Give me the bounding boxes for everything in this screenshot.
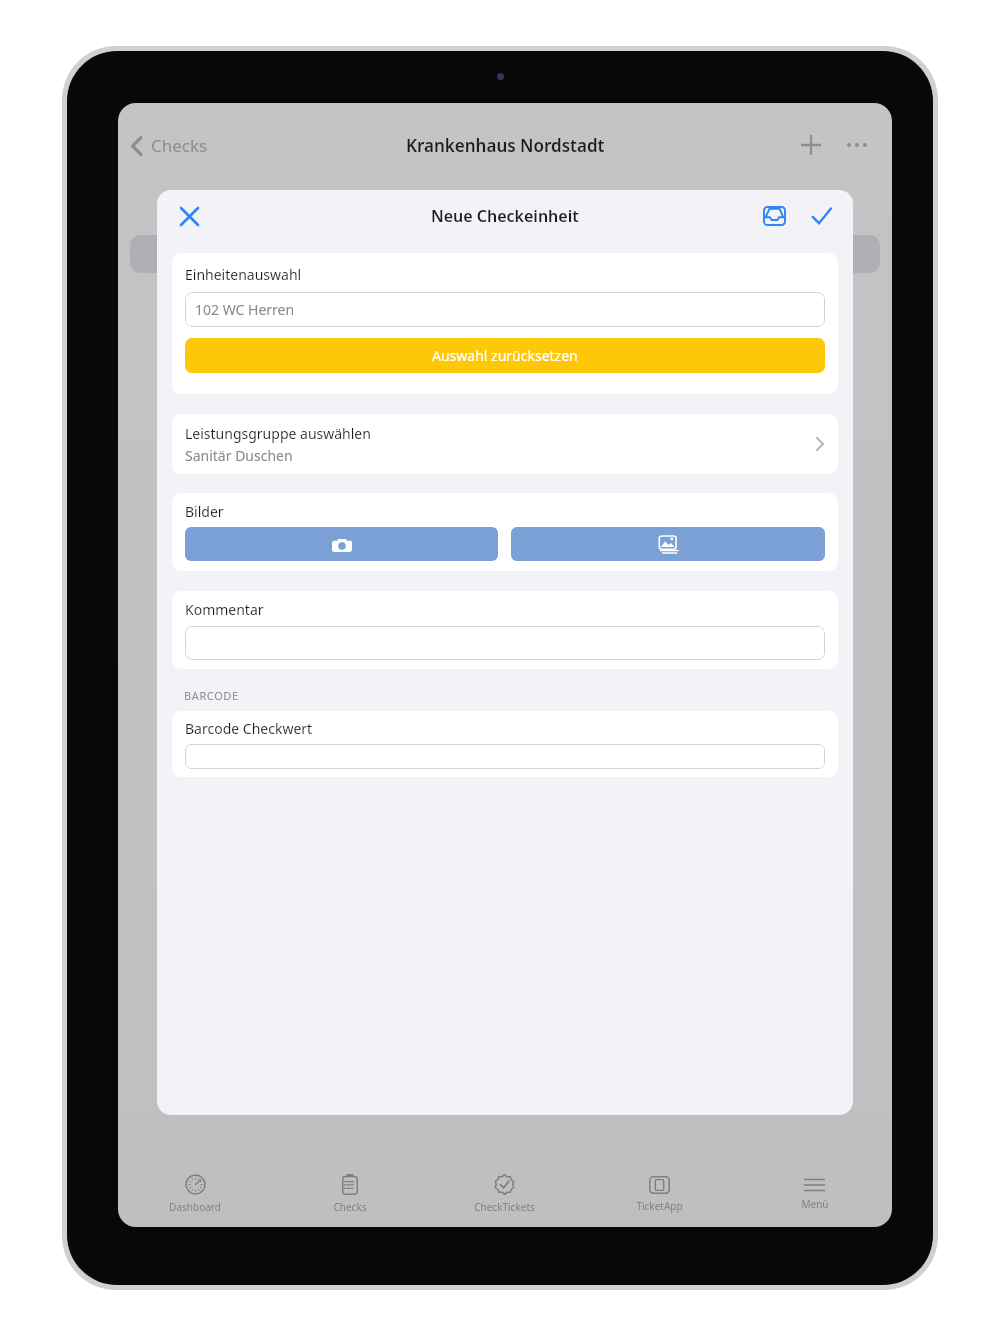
button[interactable]: Checks [272, 1161, 427, 1227]
button[interactable]: Checks [124, 128, 214, 163]
button[interactable]: 102 WC Herren [185, 292, 825, 327]
button[interactable] [185, 744, 825, 769]
button[interactable]: Bild auswählen [511, 527, 825, 561]
staticText: Checks [333, 1200, 367, 1214]
staticText: Neue Checkeinheit [431, 205, 579, 227]
staticText: CheckTickets [474, 1200, 535, 1214]
button[interactable]: Hinzufügen [794, 128, 828, 162]
button[interactable]: Auswahl zurücksetzen [185, 338, 825, 373]
staticText: Krankenhaus Nordstadt [406, 134, 605, 157]
button[interactable]: Speichern [801, 196, 841, 236]
staticText: BARCODE [184, 688, 239, 703]
button[interactable]: Leistungsgruppe auswählen [172, 414, 838, 474]
staticText: Dashboard [169, 1200, 221, 1214]
staticText: Bilder [185, 502, 224, 521]
button[interactable]: Archiv [754, 196, 794, 236]
button[interactable]: TicketApp [582, 1161, 737, 1227]
button[interactable]: CheckTickets [427, 1161, 582, 1227]
staticText: Checks [151, 134, 208, 157]
staticText: 102 WC Herren [195, 300, 295, 319]
button[interactable]: Foto aufnehmen [185, 527, 498, 561]
staticText: Auswahl zurücksetzen [432, 346, 578, 365]
button[interactable] [185, 626, 825, 660]
staticText: Menü [801, 1197, 829, 1211]
button[interactable]: Schließen [169, 196, 209, 236]
button[interactable]: Dashboard [118, 1161, 272, 1227]
staticText: TicketApp [636, 1199, 683, 1213]
staticText: Leistungsgruppe auswählen [185, 424, 371, 443]
staticText: Sanitär Duschen [185, 446, 293, 465]
staticText: Kommentar [185, 600, 264, 619]
button[interactable]: Menü [737, 1161, 892, 1227]
staticText: Einheitenauswahl [185, 265, 302, 284]
button[interactable]: Mehr [840, 128, 874, 162]
staticText: Barcode Checkwert [185, 719, 313, 738]
